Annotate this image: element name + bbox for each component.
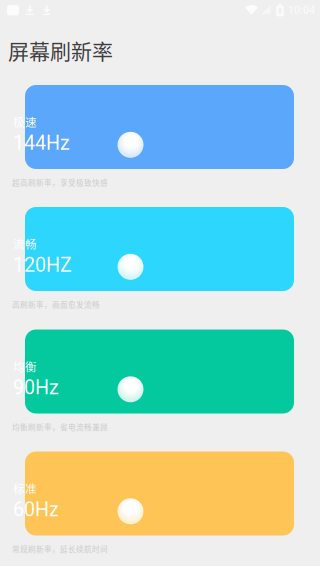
staticText: 高刷新率，画面愈发流畅 [12,299,100,310]
staticText: 流畅 [13,235,37,252]
staticText: 极速 [13,113,37,130]
staticText: 均衡 [13,358,37,375]
button[interactable] [25,451,294,535]
staticText: 均衡刷新率，省电流畅兼顾 [12,421,108,432]
staticText: 144Hz [13,131,70,155]
staticText: 常规刷新率，延长续航时间 [12,543,108,554]
staticText: 屏幕刷新率 [8,35,113,65]
staticText: 超高刷新率，享受极致快感 [12,177,108,188]
button[interactable] [25,329,294,413]
staticText: 60Hz [13,498,59,521]
staticText: 120HZ [13,253,72,277]
staticText: 标准 [13,480,37,497]
staticText: 10:04 [288,4,315,16]
staticText: 90Hz [13,376,59,399]
button[interactable] [25,85,294,169]
button[interactable] [25,207,294,291]
